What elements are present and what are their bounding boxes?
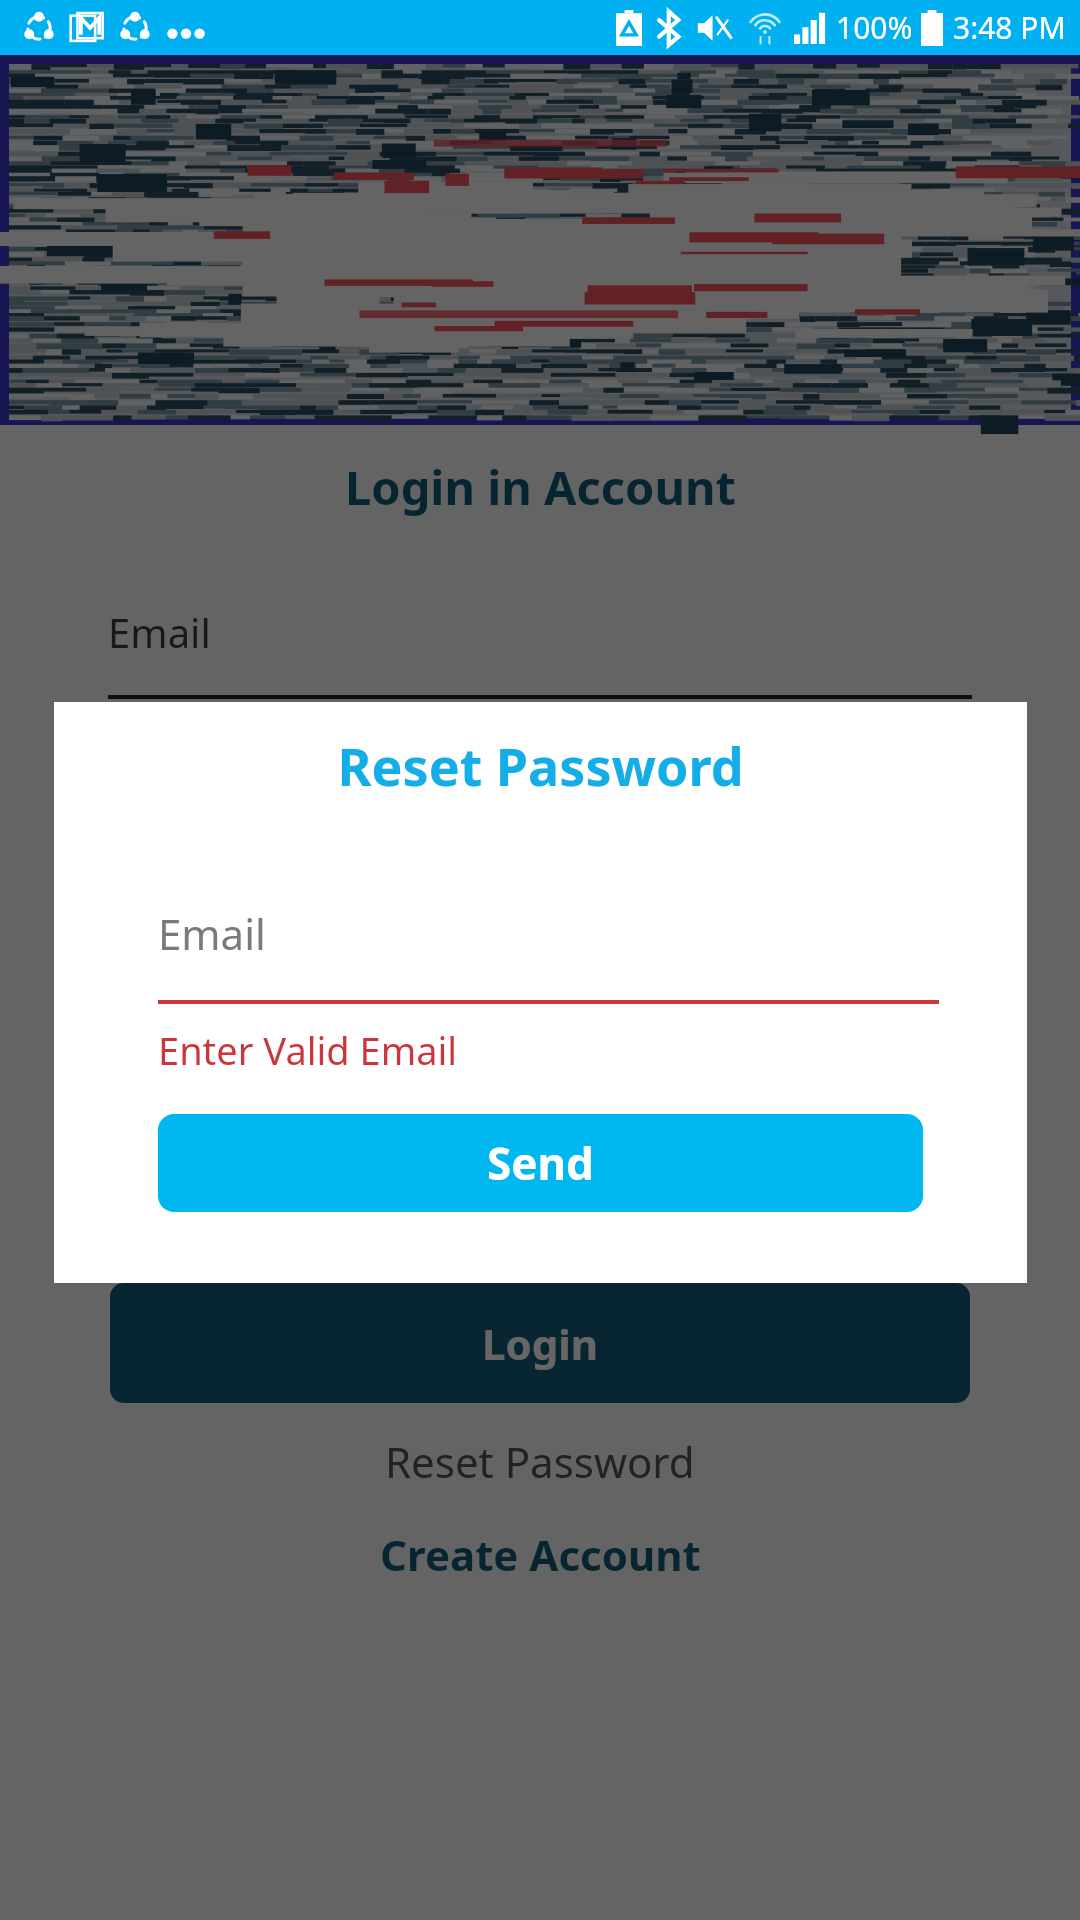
staticText: Login	[482, 1315, 599, 1372]
button[interactable]: Reset Password	[361, 1425, 719, 1498]
button[interactable]: Send	[158, 1114, 923, 1212]
staticText: Email	[108, 605, 211, 659]
button[interactable]: Login	[110, 1283, 970, 1403]
staticText: 100%	[836, 7, 913, 48]
button[interactable]: Email	[158, 905, 939, 1004]
staticText: Reset Password	[385, 1433, 695, 1490]
staticText: Enter Valid Email	[158, 1024, 458, 1076]
staticText: Reset Password	[337, 730, 744, 801]
staticText: Create Account	[380, 1526, 701, 1583]
staticText: Email	[158, 905, 266, 962]
button[interactable]: Create Account	[356, 1518, 725, 1591]
staticText: 3:48 PM	[953, 7, 1066, 48]
staticText: Login in Account	[345, 455, 736, 519]
staticText: Send	[487, 1133, 594, 1193]
